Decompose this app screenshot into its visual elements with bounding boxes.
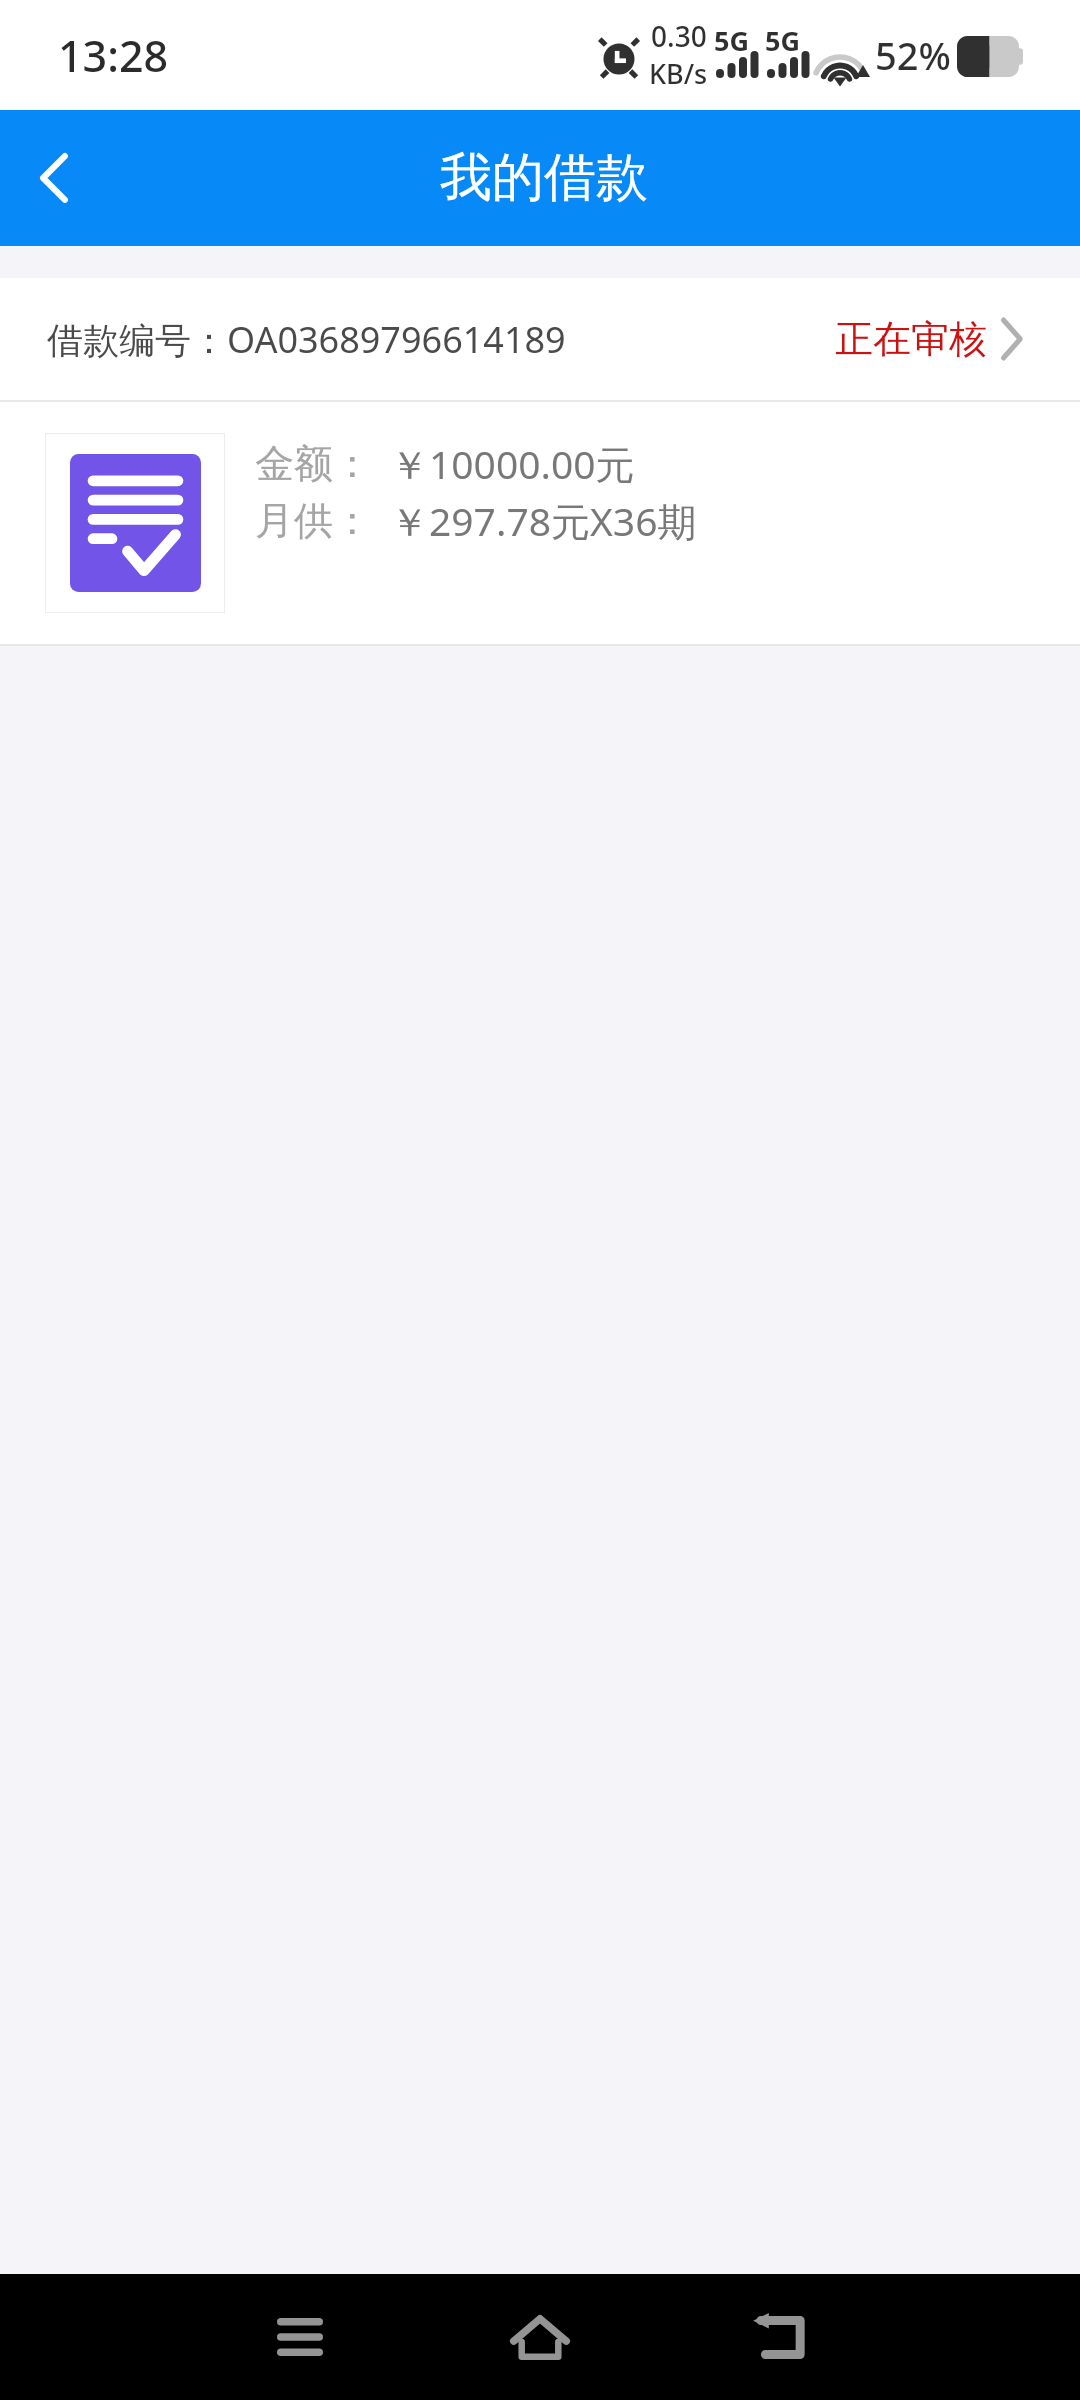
staticText: 5G: [765, 22, 800, 59]
staticText: 月供：: [255, 496, 372, 545]
button[interactable]: 金额：: [0, 402, 1080, 644]
button[interactable]: Back: [0, 110, 108, 246]
button[interactable]: Recent apps: [240, 2274, 360, 2400]
button[interactable]: 借款编号：OA03689796614189: [0, 278, 1080, 400]
staticText: ￥297.78元X36期: [390, 494, 697, 547]
staticText: 借款编号：OA03689796614189: [47, 315, 566, 364]
staticText: ￥10000.00元: [390, 437, 635, 490]
button[interactable]: Home: [480, 2274, 600, 2400]
staticText: 13:28: [58, 26, 169, 85]
staticText: KB/s: [649, 55, 708, 92]
button[interactable]: Back: [720, 2274, 840, 2400]
staticText: 金额：: [255, 439, 372, 488]
staticText: 5G: [714, 22, 749, 59]
staticText: 52%: [875, 29, 951, 81]
staticText: 我的借款: [440, 145, 648, 211]
staticText: 0.30: [651, 17, 707, 55]
staticText: 正在审核: [835, 315, 987, 363]
